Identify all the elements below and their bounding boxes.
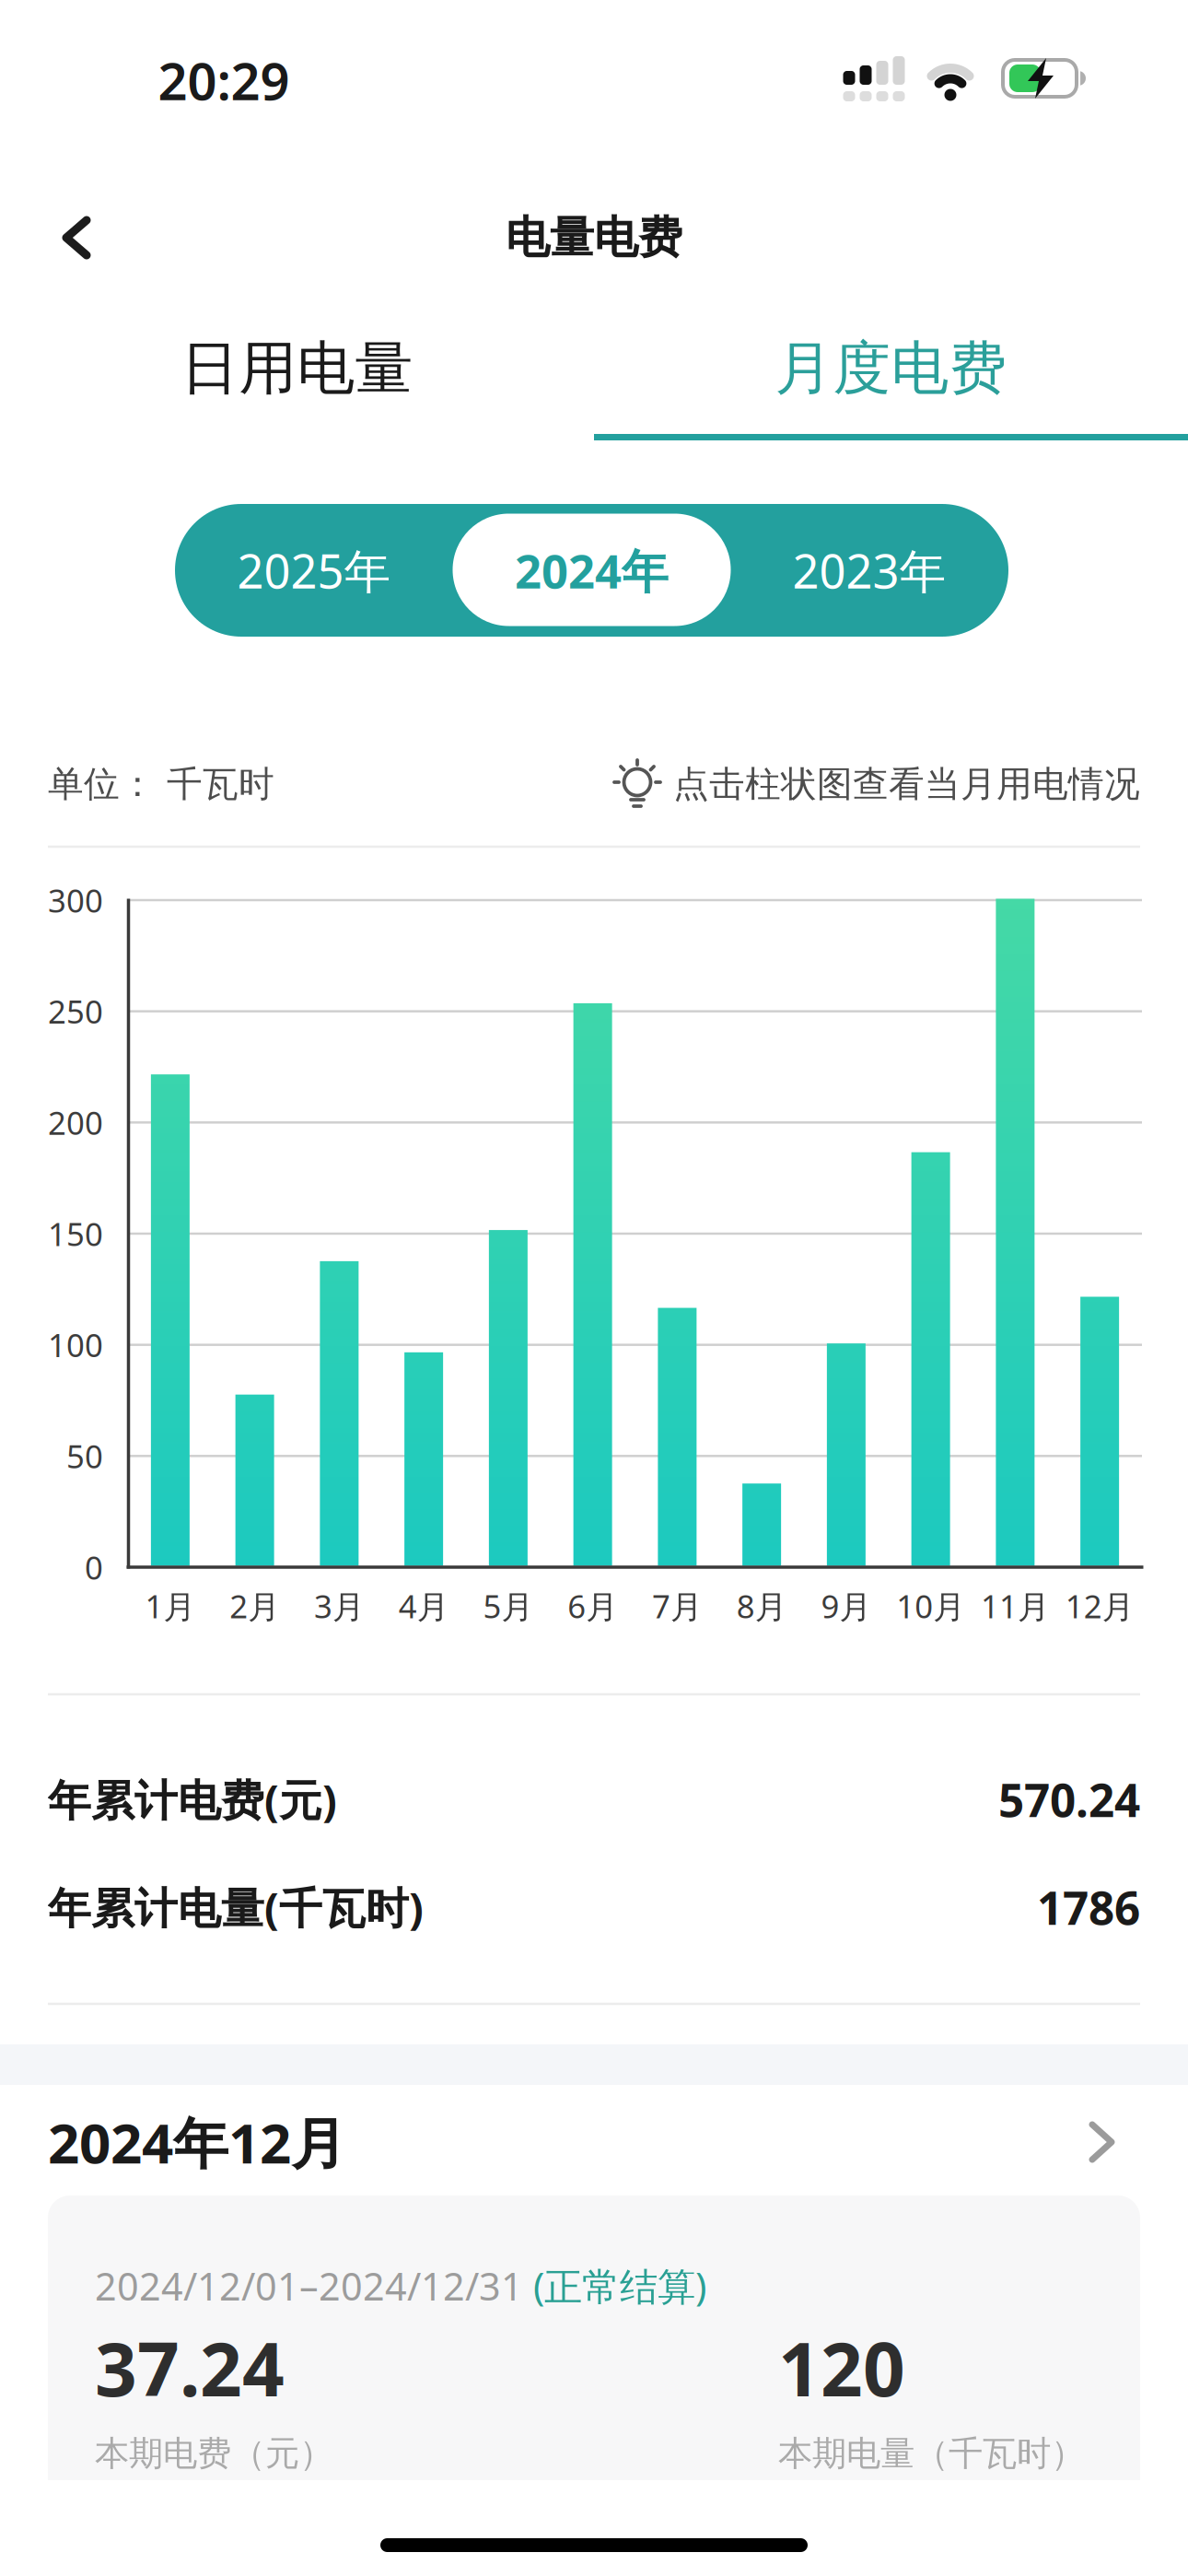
staticText: 120	[778, 2319, 905, 2417]
staticText: 年累计电量(千瓦时)	[48, 1879, 424, 1936]
button[interactable]	[320, 1261, 359, 1566]
staticText: 年累计电费(元)	[48, 1771, 337, 1828]
button[interactable]	[48, 2195, 1140, 2527]
button[interactable]	[235, 1395, 274, 1566]
staticText: 3月	[314, 1585, 365, 1627]
button[interactable]	[489, 1230, 528, 1566]
button[interactable]	[573, 1003, 612, 1566]
button[interactable]: 2023年	[731, 506, 1007, 635]
staticText: 300	[48, 879, 103, 921]
staticText: 150	[48, 1212, 103, 1255]
button[interactable]	[404, 1352, 443, 1566]
staticText: 37.24	[95, 2319, 285, 2417]
staticText: 月度电费	[775, 333, 1007, 404]
staticText: 本期电费（元）	[95, 2432, 333, 2475]
button[interactable]: 日用电量	[0, 322, 594, 415]
staticText: 4月	[398, 1585, 449, 1627]
staticText: 1月	[145, 1585, 196, 1627]
staticText: 2023年	[792, 539, 946, 601]
staticText: (正常结算)	[533, 2261, 706, 2311]
staticText: 0	[85, 1546, 103, 1588]
staticText: 2024/12/01–2024/12/31	[95, 2261, 533, 2311]
staticText: 日用电量	[181, 333, 413, 404]
staticText: 8月	[736, 1585, 787, 1627]
staticText: 20:29	[158, 46, 290, 114]
staticText: 2024年	[515, 539, 669, 601]
button[interactable]	[658, 1308, 697, 1566]
staticText: 1786	[1037, 1877, 1140, 1937]
button[interactable]	[151, 1074, 190, 1566]
button[interactable]: 2025年	[176, 506, 452, 635]
staticText: 2024年12月	[48, 2105, 346, 2179]
staticText: 250	[48, 990, 103, 1032]
button[interactable]: 2024年12月	[48, 2105, 1140, 2179]
button[interactable]	[63, 217, 99, 258]
staticText: 7月	[652, 1585, 703, 1627]
staticText: 2月	[229, 1585, 280, 1627]
staticText: 12月	[1065, 1585, 1134, 1627]
button[interactable]	[996, 899, 1035, 1566]
staticText: 电量电费	[506, 211, 682, 265]
staticText: 本期电量（千瓦时）	[778, 2432, 1085, 2475]
staticText: 5月	[483, 1585, 534, 1627]
staticText: 100	[48, 1324, 103, 1366]
staticText: 单位： 千瓦时	[48, 762, 274, 806]
button[interactable]	[827, 1343, 866, 1566]
button[interactable]	[1080, 1297, 1119, 1566]
button[interactable]: 月度电费	[594, 322, 1188, 415]
staticText: 570.24	[998, 1769, 1140, 1829]
button[interactable]	[911, 1152, 950, 1566]
button[interactable]: 2024年	[454, 506, 730, 635]
staticText: 11月	[981, 1585, 1050, 1627]
staticText: 2025年	[237, 539, 391, 601]
button[interactable]	[742, 1484, 781, 1566]
staticText: 10月	[896, 1585, 965, 1627]
staticText: 6月	[567, 1585, 618, 1627]
staticText: 200	[48, 1101, 103, 1144]
staticText: 9月	[821, 1585, 872, 1627]
staticText: 50	[66, 1435, 103, 1477]
staticText: 点击柱状图查看当月用电情况	[662, 762, 1140, 806]
